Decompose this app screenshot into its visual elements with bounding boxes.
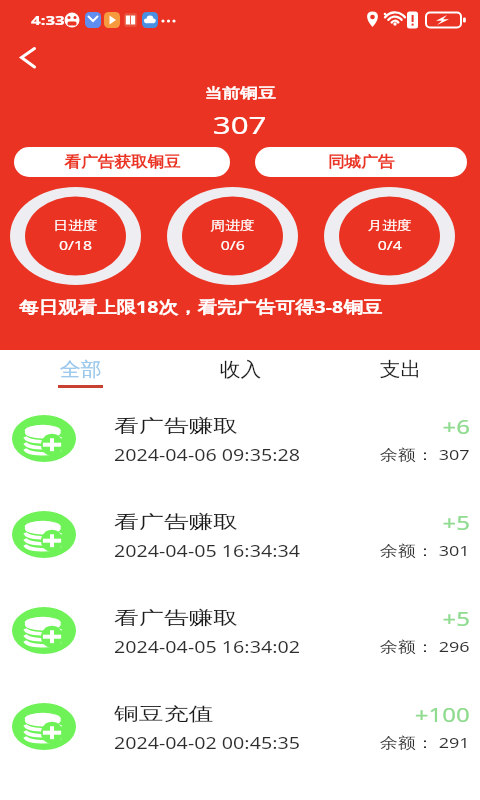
staticText: +5 bbox=[442, 509, 470, 536]
staticText: +100 bbox=[415, 701, 470, 728]
button[interactable]: 看广告获取铜豆 bbox=[14, 147, 230, 177]
button[interactable]: 看广告赚取 bbox=[0, 590, 480, 686]
button[interactable]: 全部 bbox=[0, 350, 160, 398]
staticText: 当前铜豆 bbox=[204, 85, 275, 103]
staticText: 每日观看上限18次，看完广告可得3-8铜豆 bbox=[19, 296, 383, 318]
staticText: 余额： 296 bbox=[380, 636, 470, 656]
button[interactable]: 看广告赚取 bbox=[0, 398, 480, 494]
staticText: 月进度 bbox=[367, 217, 412, 233]
staticText: 日进度 bbox=[53, 217, 98, 233]
button[interactable]: 收入 bbox=[160, 350, 320, 398]
button[interactable]: 周进度 bbox=[167, 187, 298, 285]
staticText: 看广告赚取 bbox=[114, 607, 238, 630]
staticText: 看广告赚取 bbox=[114, 511, 238, 534]
staticText: 2024-04-05 16:34:34 bbox=[114, 540, 301, 562]
staticText: 收入 bbox=[220, 357, 261, 382]
staticText: 看广告获取铜豆 bbox=[64, 153, 181, 172]
staticText: 307 bbox=[213, 109, 267, 140]
staticText: 2024-04-02 00:45:35 bbox=[114, 732, 301, 754]
button[interactable]: 看广告赚取 bbox=[0, 494, 480, 590]
staticText: 余额： 291 bbox=[380, 732, 470, 752]
staticText: 周进度 bbox=[210, 217, 255, 233]
button[interactable]: 同城广告 bbox=[255, 147, 467, 177]
staticText: 0/6 bbox=[221, 236, 245, 254]
staticText: 铜豆充值 bbox=[114, 703, 213, 726]
staticText: 4:33 bbox=[31, 11, 65, 29]
button[interactable]: 月进度 bbox=[324, 187, 455, 285]
staticText: 支出 bbox=[380, 357, 421, 382]
staticText: +6 bbox=[442, 413, 470, 440]
staticText: +5 bbox=[442, 605, 470, 632]
staticText: 0/18 bbox=[59, 236, 93, 254]
staticText: 2024-04-06 09:35:28 bbox=[114, 444, 301, 466]
staticText: 同城广告 bbox=[328, 153, 394, 172]
staticText: 看广告赚取 bbox=[114, 415, 238, 438]
button[interactable]: 铜豆充值 bbox=[0, 686, 480, 782]
staticText: 0/4 bbox=[378, 236, 402, 254]
staticText: 全部 bbox=[60, 357, 101, 382]
staticText: 余额： 301 bbox=[380, 540, 470, 560]
staticText: 2024-04-05 16:34:02 bbox=[114, 636, 301, 658]
button[interactable]: 支出 bbox=[320, 350, 480, 398]
button[interactable]: 日进度 bbox=[10, 187, 141, 285]
button[interactable]: Back bbox=[6, 37, 48, 79]
staticText: 余额： 307 bbox=[380, 444, 470, 464]
